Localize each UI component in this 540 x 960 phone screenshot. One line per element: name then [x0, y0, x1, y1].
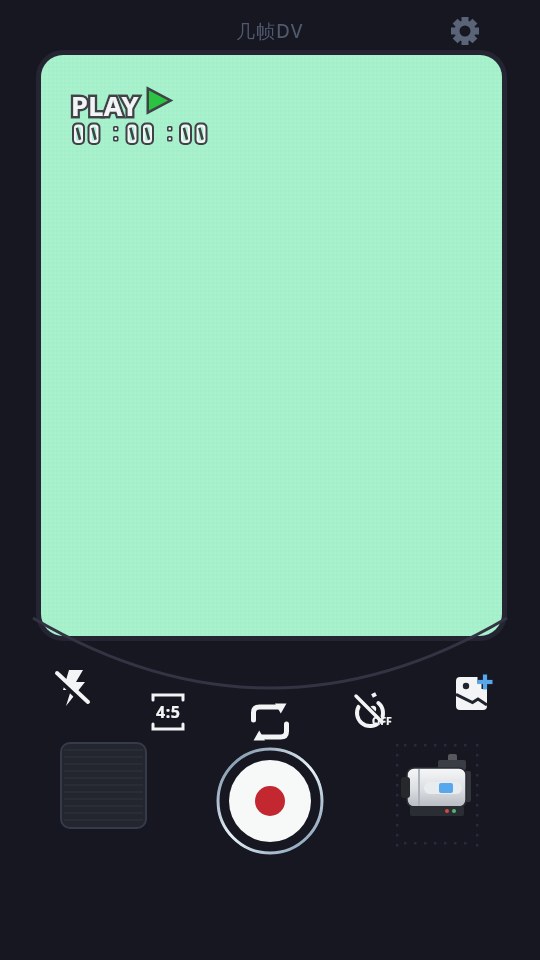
button[interactable] [388, 730, 488, 850]
staticText: 4:5 [156, 701, 181, 723]
button[interactable]: 4:5 [146, 690, 190, 734]
staticText: PLAY [71, 87, 139, 124]
button[interactable] [450, 668, 494, 712]
button[interactable] [449, 15, 481, 47]
button[interactable] [216, 747, 324, 855]
staticText: OFF [372, 714, 392, 728]
button[interactable] [52, 666, 92, 706]
button[interactable]: OFF [350, 690, 394, 734]
button[interactable] [248, 700, 292, 744]
staticText: PLAY [71, 87, 139, 124]
button[interactable] [60, 742, 147, 829]
staticText: 几帧DV [236, 18, 304, 44]
